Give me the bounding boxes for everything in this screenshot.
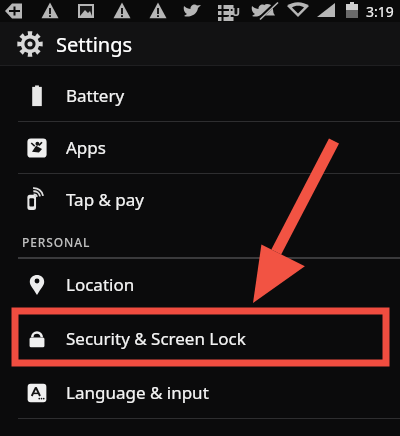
button[interactable]: Battery — [0, 70, 400, 121]
staticText: Location — [66, 273, 135, 296]
button[interactable]: Language & input — [0, 367, 400, 418]
staticText: Tap & pay — [66, 188, 145, 211]
staticText: Language & input — [66, 381, 209, 404]
staticText: Battery — [66, 84, 125, 107]
staticText: Security & Screen Lock — [66, 327, 246, 350]
staticText: 3:19 — [366, 2, 394, 21]
button[interactable]: Location — [0, 259, 400, 310]
staticText: Settings — [56, 31, 133, 58]
button[interactable]: Security & Screen Lock — [0, 313, 400, 364]
button[interactable]: Tap & pay — [0, 174, 400, 225]
staticText: JU — [228, 4, 240, 19]
staticText: Apps — [66, 136, 106, 159]
button[interactable]: Apps — [0, 122, 400, 173]
staticText: PERSONAL — [22, 234, 91, 250]
